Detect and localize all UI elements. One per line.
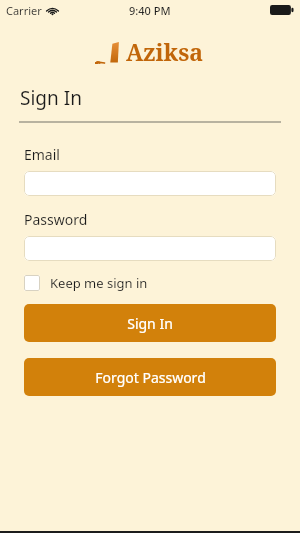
staticText: Aziksa — [126, 36, 204, 67]
staticText: Keep me sign in — [50, 274, 148, 292]
button[interactable]: Forgot Password — [24, 358, 276, 396]
button[interactable]: Sign In — [24, 304, 276, 342]
staticText: Forgot Password — [95, 368, 206, 387]
button[interactable]: Email input — [24, 171, 276, 196]
staticText: Sign In — [127, 314, 173, 333]
button[interactable]: Password input — [24, 236, 276, 261]
staticText: Email — [24, 145, 60, 164]
staticText: Carrier — [6, 3, 42, 18]
staticText: 9:40 PM — [129, 3, 171, 18]
staticText: Sign In — [20, 85, 82, 111]
other: Battery — [270, 5, 294, 15]
staticText: Password — [24, 210, 88, 229]
other: Wi-Fi — [47, 6, 58, 15]
button[interactable]: Keep me sign in — [24, 274, 148, 292]
